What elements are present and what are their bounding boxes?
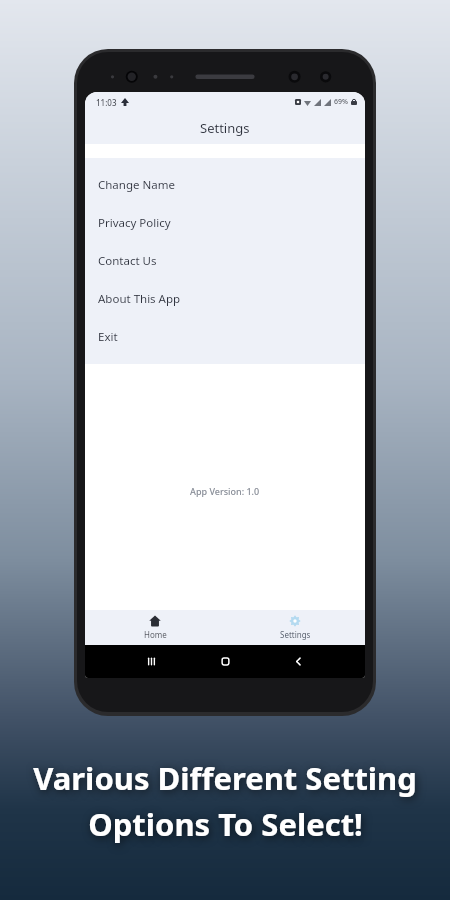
button[interactable]: Contact Us xyxy=(85,242,365,280)
button[interactable]: Change Name xyxy=(85,166,365,204)
staticText: Exit xyxy=(98,329,118,345)
other: Home xyxy=(149,615,161,627)
button[interactable]: Exit xyxy=(85,318,365,356)
staticText: About This App xyxy=(98,291,181,307)
button[interactable]: Privacy Policy xyxy=(85,204,365,242)
staticText: Various Different Setting xyxy=(33,757,417,799)
other: Settings xyxy=(289,615,301,627)
staticText: Settings xyxy=(280,629,311,640)
staticText: 69% xyxy=(334,97,348,107)
staticText: Privacy Policy xyxy=(98,215,171,231)
staticText: Options To Select! xyxy=(88,803,363,845)
staticText: 11:03 xyxy=(96,97,117,108)
staticText: Change Name xyxy=(98,177,175,193)
button[interactable]: About This App xyxy=(85,280,365,318)
staticText: Home xyxy=(144,629,167,640)
other: Home button xyxy=(219,655,232,668)
button[interactable]: Home xyxy=(85,610,225,645)
staticText: Settings xyxy=(200,119,250,137)
other: Recents xyxy=(145,655,158,668)
staticText: Contact Us xyxy=(98,253,157,269)
other: Back xyxy=(292,655,305,668)
staticText: App Version: 1.0 xyxy=(190,485,260,497)
button[interactable]: Settings xyxy=(225,610,365,645)
